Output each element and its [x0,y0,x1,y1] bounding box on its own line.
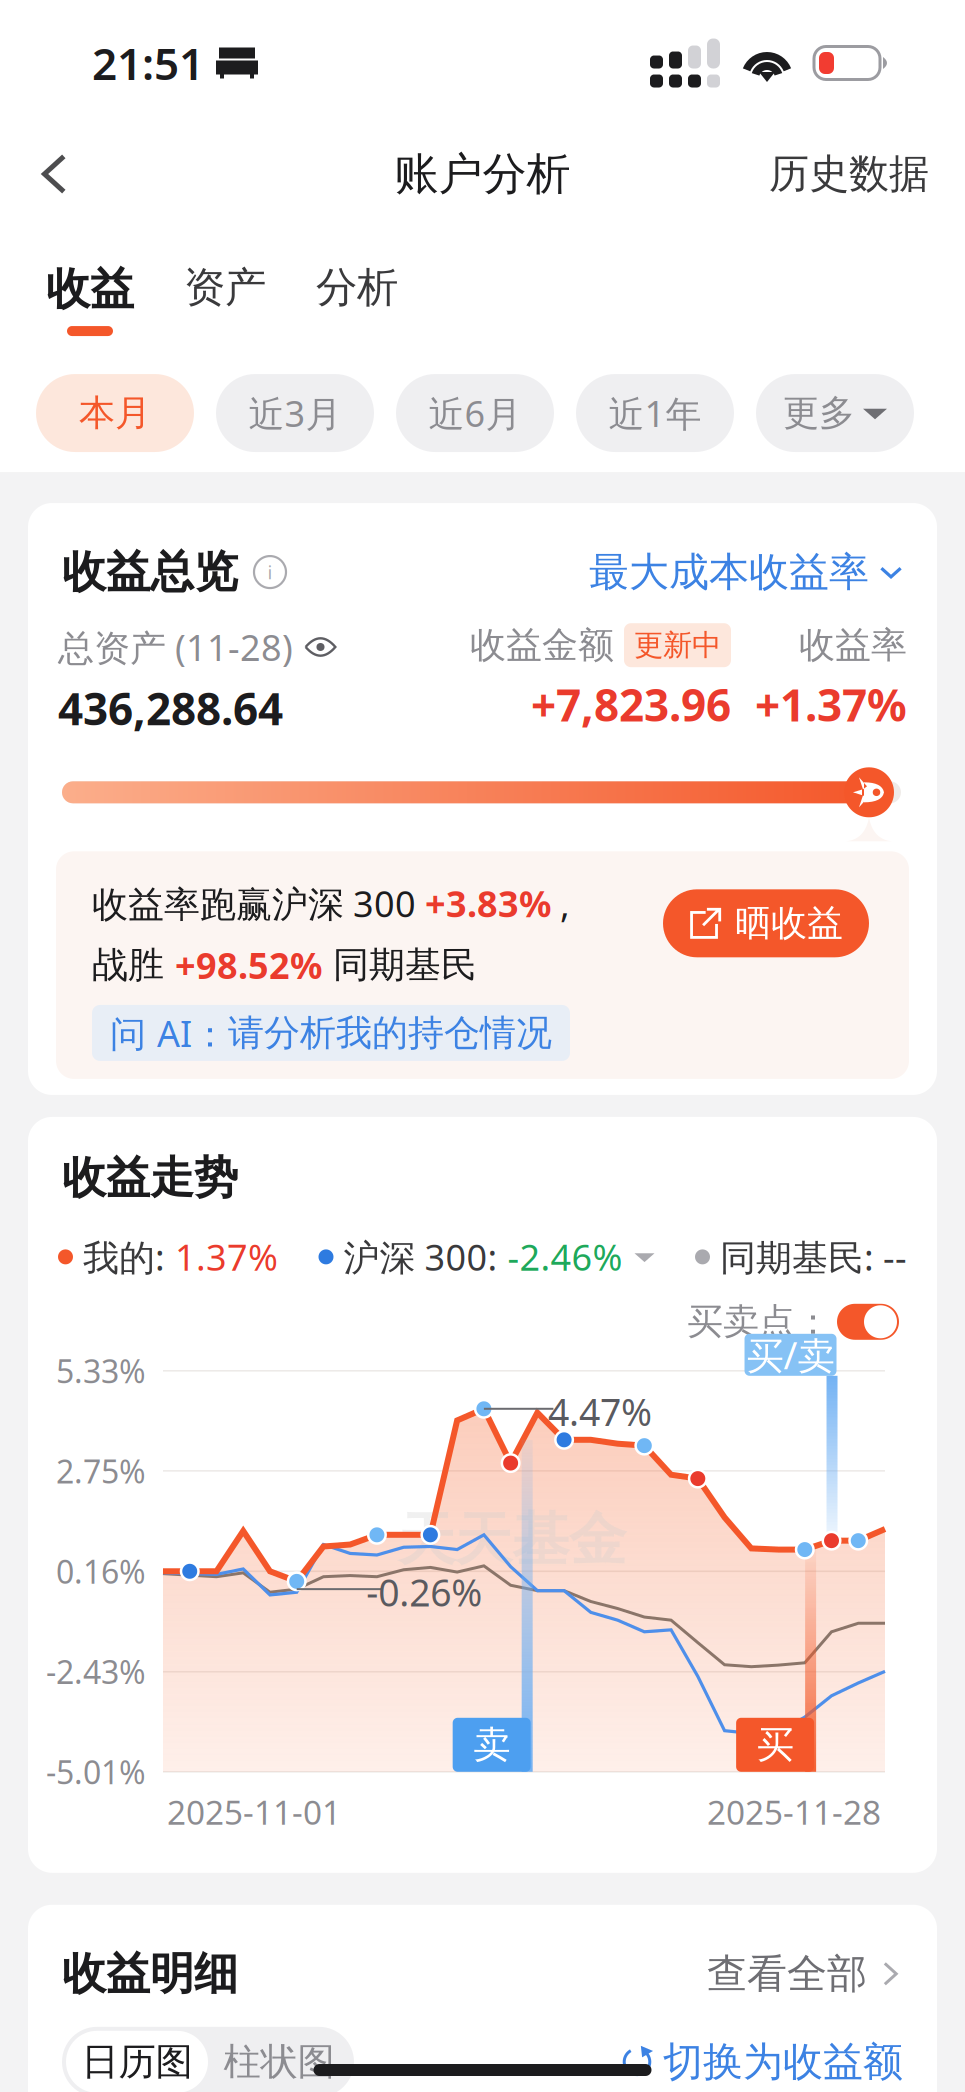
staticText: 买 [757,1722,794,1768]
staticText: 近6月 [428,389,521,437]
staticText: 2025-11-28 [707,1790,881,1834]
button[interactable]: 近6月 [396,374,554,452]
staticText: 买卖点： [687,1300,831,1344]
button[interactable]: 最大成本收益率 [589,547,903,597]
button[interactable]: 日历图 [66,2031,208,2092]
staticText: 总资产 (11-28) [58,623,293,671]
staticText: 查看全部 [707,1949,867,1998]
staticText: 同期基民 [322,943,477,987]
button[interactable]: 近1年 [576,374,734,452]
staticText: 柱状图 [223,2039,334,2085]
staticText: 战胜 [92,943,175,987]
staticText: 分析 [316,262,398,313]
staticText: 收益总览 [62,545,238,599]
button[interactable]: 切换为收益额 [621,2037,903,2086]
staticText: 更新中 [634,627,721,663]
staticText: -5.01% [46,1750,146,1793]
staticText: 沪深 300: [343,1233,497,1281]
staticText: 收益走势 [62,1151,238,1205]
staticText: 近3月 [248,389,341,437]
staticText: 资产 [184,262,266,313]
staticText: +7,823.96 [531,675,731,734]
staticText: -2.43% [46,1650,146,1693]
staticText: 日历图 [81,2039,192,2085]
button[interactable]: 查看全部 [707,1949,903,1998]
staticText: -0.26% [366,1567,482,1617]
staticText: 0.16% [56,1550,146,1592]
button[interactable]: 沪深 300: [318,1233,654,1281]
staticText: 历史数据 [769,149,929,198]
button[interactable]: 收益 [46,262,134,336]
button[interactable]: 晒收益 [663,889,869,957]
staticText: 收益明细 [62,1947,238,2001]
staticText: 收益率跑赢沪深 300 [92,879,425,927]
staticText: 收益金额 [470,623,614,667]
button[interactable]: 资产 [184,262,266,333]
button[interactable]: 近3月 [216,374,374,452]
staticText: 更多 [783,391,855,435]
button[interactable]: Toggle buy/sell markers [837,1304,899,1340]
staticText: +3.83% [425,879,551,927]
staticText: -2.46% [507,1233,622,1281]
staticText: 天天基金 [398,1505,626,1575]
staticText: 436,288.64 [58,679,283,737]
staticText: 1.37% [175,1233,278,1281]
staticText: i [267,560,272,584]
staticText: 21:51 [92,34,204,92]
staticText: 4.47% [548,1387,652,1436]
staticText: +1.37% [755,675,907,734]
button[interactable]: 更多 [756,374,914,452]
button[interactable]: Back [0,126,110,222]
staticText: 近1年 [608,389,701,437]
button[interactable]: 本月 [36,374,194,452]
staticText: 5.33% [56,1349,146,1392]
staticText: +98.52% [175,941,322,989]
staticText: 请分析我的持仓情况 [228,1011,552,1055]
button[interactable]: 分析 [316,262,398,333]
staticText: 我的: [83,1233,165,1281]
staticText: 2.75% [56,1450,146,1492]
staticText: 同期基民: -- [720,1233,907,1281]
staticText: 账户分析 [394,147,570,201]
staticText: 2025-11-01 [167,1790,341,1834]
staticText: 最大成本收益率 [589,547,869,597]
button[interactable]: 问 AI： [92,1005,570,1061]
staticText: 卖 [473,1722,510,1768]
staticText: 问 AI： [110,1009,228,1057]
staticText: 收益率 [799,623,907,667]
staticText: 本月 [79,391,151,435]
staticText: , [551,879,570,927]
button[interactable]: 历史数据 [733,126,965,222]
staticText: 买/卖 [746,1330,834,1380]
button[interactable]: 柱状图 [208,2031,350,2092]
staticText: 收益 [46,262,134,316]
staticText: 切换为收益额 [663,2037,903,2086]
staticText: 晒收益 [735,901,843,945]
button[interactable]: Toggle balance visibility [305,631,336,662]
